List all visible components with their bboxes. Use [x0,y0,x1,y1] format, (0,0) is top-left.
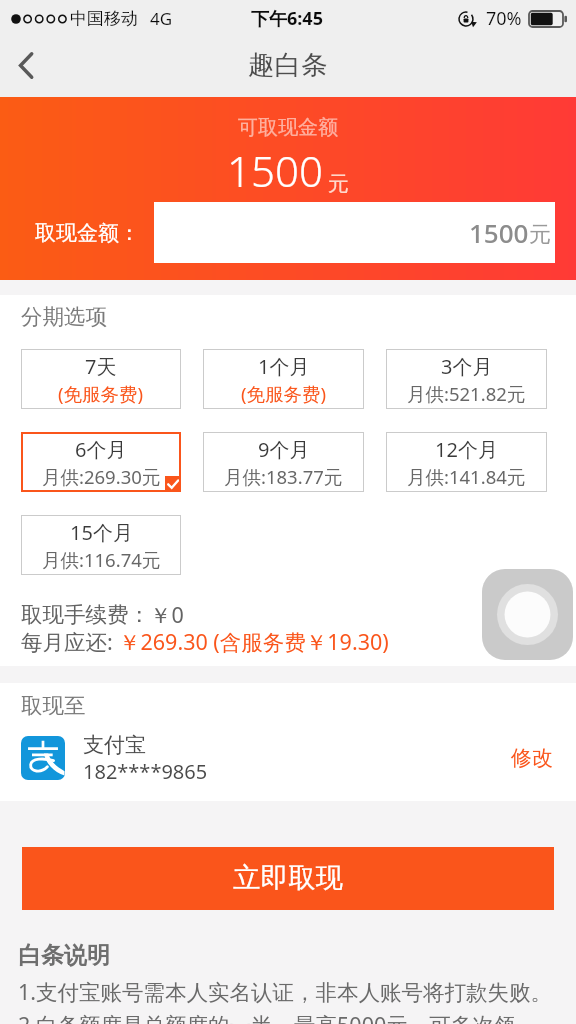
button[interactable]: 12个月 [386,432,547,492]
button[interactable]: AssistiveTouch [482,569,573,660]
staticText: 1500 [227,142,323,199]
staticText: 月供:521.82元 [407,381,526,406]
staticText: 修改 [511,745,553,771]
staticText: 月供:183.77元 [224,464,343,489]
staticText: 下午6:45 [251,6,323,31]
staticText: 支付宝 [83,732,146,758]
staticText: 月供:269.30元 [42,464,161,489]
staticText: 7天 [85,353,117,380]
staticText: 立即取现 [233,861,343,896]
staticText: 182****9865 [83,758,208,785]
staticText: 白条说明 [18,941,110,970]
staticText: 月供:116.74元 [42,547,161,572]
staticText: 70% [486,6,522,31]
staticText: 12个月 [435,436,498,463]
button[interactable]: 3个月 [386,349,547,409]
button[interactable]: Back [0,37,52,94]
staticText: 4G [150,7,173,30]
staticText: 中国移动 [70,8,138,29]
staticText: 2.白条额度是总额度的一半，最高5000元，可多次领 [18,1010,516,1024]
staticText: 取现手续费： [21,601,150,628]
staticText: (免服务费) [241,381,327,406]
staticText: 元 [529,221,551,249]
staticText: 9个月 [258,436,310,463]
staticText: (免服务费) [58,381,144,406]
staticText: 月供:141.84元 [407,464,526,489]
staticText: 1.支付宝账号需本人实名认证，非本人账号将打款失败。 [18,977,553,1006]
staticText: 1个月 [258,353,310,380]
button[interactable]: 支付宝 [21,730,553,786]
staticText: 可取现金额 [238,115,338,140]
staticText: ￥0 [150,600,184,629]
staticText: 趣白条 [248,48,328,81]
button[interactable]: 9个月 [203,432,364,492]
button[interactable]: 6个月 [21,432,181,492]
staticText: 15个月 [70,519,133,546]
staticText: 每月应还: [21,627,119,656]
button[interactable]: 立即取现 [22,847,554,910]
staticText: 3个月 [441,353,493,380]
staticText: 6个月 [75,436,127,463]
button[interactable]: 1个月 [203,349,364,409]
staticText: 取现金额： [35,220,140,246]
staticText: 1500 [469,215,529,250]
staticText: 取现至 [21,692,86,719]
button[interactable]: 15个月 [21,515,181,575]
button[interactable]: 7天 [21,349,181,409]
staticText: 元 [328,171,349,197]
staticText: 分期选项 [21,303,107,330]
staticText: ￥269.30 (含服务费￥19.30) [119,627,389,656]
